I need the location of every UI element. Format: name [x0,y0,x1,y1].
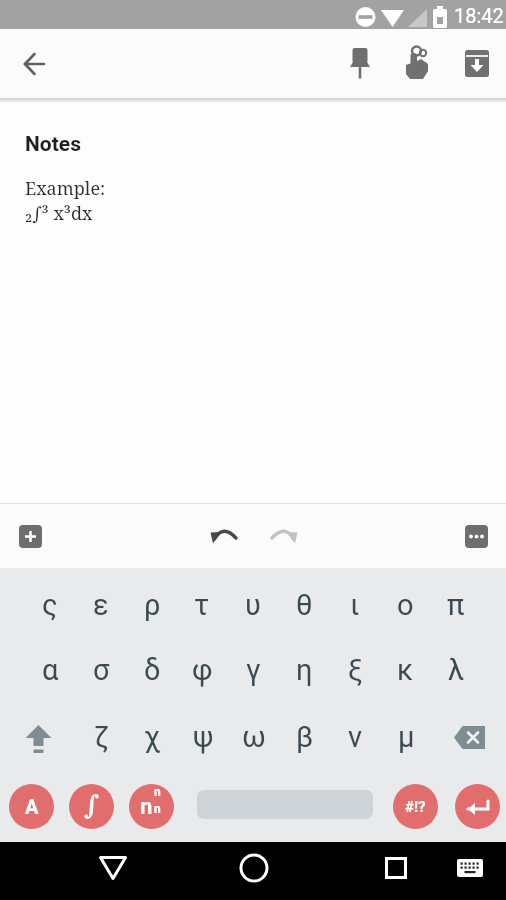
staticText: ζ [94,720,110,754]
staticText: n [154,802,161,816]
button[interactable]: ι [330,581,380,629]
button[interactable]: ω [229,713,279,761]
button[interactable] [455,784,500,829]
staticText: A [25,795,39,818]
button[interactable]: η [279,646,329,694]
button[interactable]: α [25,646,75,694]
button[interactable] [458,518,494,554]
button[interactable]: χ [127,713,177,761]
button[interactable]: ζ [77,713,127,761]
button[interactable]: θ [279,581,329,629]
staticText: 18:42 [454,4,504,27]
button[interactable]: n [129,784,174,829]
button[interactable] [88,843,138,893]
staticText: n [154,785,161,799]
staticText: ο [397,588,414,622]
button[interactable] [371,843,421,893]
button[interactable] [457,43,497,83]
staticText: ₂∫³ x³dx [25,201,93,226]
staticText: ς [42,588,58,622]
staticText: ψ [193,720,214,754]
staticText: ξ [348,653,363,687]
button[interactable]: κ [380,646,430,694]
staticText: π [447,588,465,622]
staticText: φ [192,653,213,687]
button[interactable]: ς [25,581,75,629]
staticText: κ [397,653,414,687]
button[interactable]: δ [127,646,177,694]
button[interactable] [229,843,279,893]
staticText: β [296,720,314,754]
button[interactable]: τ [177,581,227,629]
staticText: #!? [405,798,426,816]
button[interactable] [204,516,244,556]
button[interactable]: ξ [330,646,380,694]
button[interactable]: A [9,784,54,829]
button[interactable] [440,713,498,761]
button[interactable]: υ [228,581,278,629]
staticText: Notes [25,132,81,157]
staticText: δ [144,653,161,687]
staticText: ι [350,588,360,622]
button[interactable]: φ [177,646,227,694]
staticText: υ [245,588,261,622]
staticText: λ [448,653,465,687]
staticText: η [296,653,313,687]
staticText: χ [144,720,161,754]
staticText: Example: [25,176,106,201]
button[interactable] [264,516,304,556]
staticText: ρ [144,588,161,622]
button[interactable]: μ [381,713,431,761]
button[interactable] [8,713,68,761]
button[interactable]: ν [330,713,380,761]
button[interactable]: γ [228,646,278,694]
button[interactable] [448,849,492,887]
staticText: θ [296,588,313,622]
button[interactable]: ψ [178,713,228,761]
button[interactable] [14,43,54,83]
button[interactable]: β [280,713,330,761]
staticText: ε [93,588,109,622]
button[interactable]: π [431,581,481,629]
button[interactable]: σ [76,646,126,694]
staticText: n [140,794,153,820]
button[interactable] [397,43,437,83]
staticText: ∫ [84,790,100,821]
button[interactable] [12,518,48,554]
button[interactable] [340,43,380,83]
staticText: ω [242,720,266,754]
button[interactable]: ρ [127,581,177,629]
button[interactable]: ∫ [69,784,114,829]
staticText: γ [246,653,261,687]
button[interactable]: λ [431,646,481,694]
staticText: μ [398,720,415,754]
staticText: ν [348,720,363,754]
button[interactable]: ε [76,581,126,629]
staticText: τ [194,588,210,622]
button[interactable]: ο [380,581,430,629]
staticText: α [42,653,59,687]
staticText: σ [93,653,110,687]
button[interactable]: #!? [393,784,438,829]
